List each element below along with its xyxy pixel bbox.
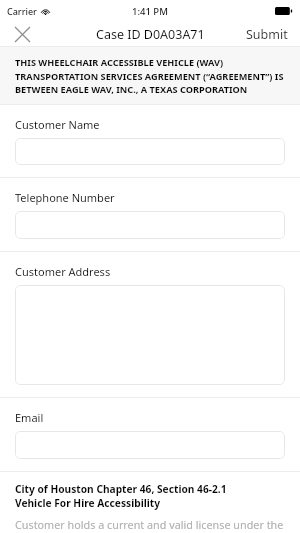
button[interactable]: Submit — [234, 22, 300, 46]
staticText: Customer Name — [15, 117, 100, 132]
button[interactable] — [15, 285, 285, 385]
staticText: Carrier — [7, 5, 37, 17]
staticText: 1:41 PM — [132, 5, 168, 18]
button[interactable] — [15, 211, 285, 239]
staticText: Email — [15, 410, 44, 425]
staticText: City of Houston Chapter 46, Section 46-2… — [15, 482, 227, 510]
staticText: Customer Address — [15, 264, 111, 279]
staticText: Telephone Number — [15, 190, 115, 205]
button[interactable] — [15, 138, 285, 165]
button[interactable]: Close — [0, 22, 45, 46]
button[interactable] — [15, 431, 285, 459]
staticText: THIS WHEELCHAIR ACCESSIBLE VEHICLE (WAV)… — [15, 56, 290, 95]
staticText: Customer holds a current and valid licen… — [15, 517, 285, 533]
staticText: Case ID D0A03A71 — [96, 26, 205, 43]
staticText: Submit — [246, 26, 288, 43]
